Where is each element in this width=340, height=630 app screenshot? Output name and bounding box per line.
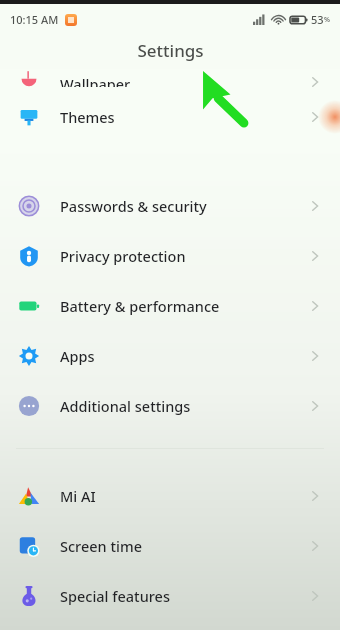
staticText: Screen time bbox=[60, 536, 142, 556]
staticText: Privacy protection bbox=[60, 246, 186, 266]
button[interactable]: Privacy protection bbox=[0, 231, 340, 281]
button[interactable]: Passwords & security bbox=[0, 181, 340, 231]
staticText: Mi AI bbox=[60, 486, 96, 506]
button[interactable]: Additional settings bbox=[0, 381, 340, 431]
button[interactable]: Battery & performance bbox=[0, 281, 340, 331]
staticText: Special features bbox=[60, 586, 170, 606]
staticText: 53 bbox=[311, 12, 324, 27]
staticText: Apps bbox=[60, 346, 95, 366]
button[interactable]: Special features bbox=[0, 571, 340, 621]
button[interactable]: Apps bbox=[0, 331, 340, 381]
staticText: Wallpaper bbox=[60, 74, 131, 87]
staticText: Additional settings bbox=[60, 396, 191, 416]
staticText: Battery & performance bbox=[60, 296, 220, 316]
staticText: % bbox=[324, 15, 330, 25]
button[interactable]: Wallpaper bbox=[0, 66, 340, 92]
button[interactable]: Themes bbox=[0, 92, 340, 142]
staticText: Themes bbox=[60, 107, 115, 127]
staticText: Passwords & security bbox=[60, 196, 207, 216]
button[interactable]: Screen time bbox=[0, 521, 340, 571]
staticText: Settings bbox=[137, 39, 204, 62]
button[interactable]: Mi AI bbox=[0, 471, 340, 521]
staticText: 10:15 AM bbox=[10, 12, 59, 27]
